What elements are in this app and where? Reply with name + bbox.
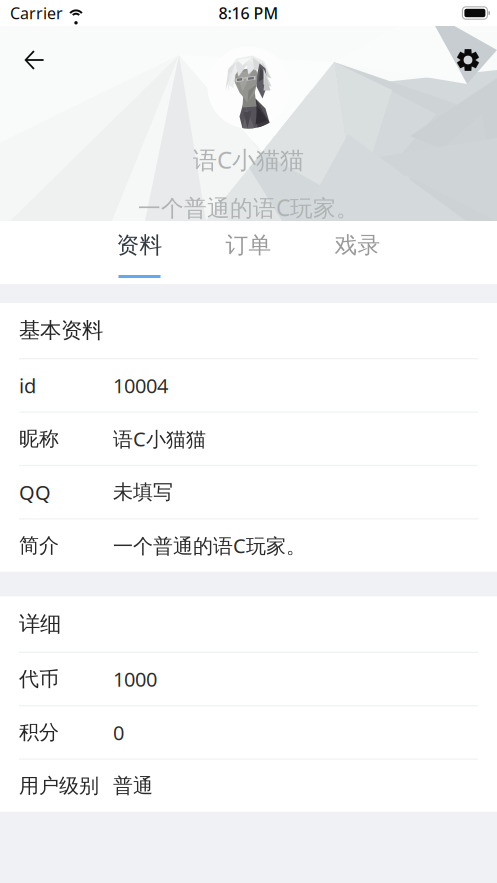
staticText: 昵称: [19, 426, 59, 451]
staticText: 普通: [113, 773, 153, 798]
staticText: 语C小猫猫: [193, 143, 304, 175]
staticText: 10004: [113, 372, 168, 399]
staticText: 用户级别: [19, 773, 99, 798]
button[interactable]: 资料: [85, 221, 194, 284]
button[interactable]: Back: [12, 38, 56, 82]
staticText: 0: [113, 719, 124, 746]
staticText: QQ: [19, 479, 51, 505]
staticText: 订单: [225, 231, 271, 259]
staticText: 基本资料: [19, 317, 103, 344]
staticText: 简介: [19, 533, 59, 558]
staticText: id: [19, 372, 36, 399]
staticText: 详细: [19, 611, 61, 637]
staticText: 未填写: [113, 480, 173, 504]
staticText: 资料: [116, 231, 162, 259]
staticText: 积分: [19, 720, 59, 745]
staticText: 戏录: [334, 231, 380, 259]
button[interactable]: 订单: [194, 221, 303, 284]
staticText: 8:16 PM: [218, 2, 278, 24]
staticText: 一个普通的语C玩家。: [113, 532, 306, 559]
staticText: Carrier: [10, 2, 63, 24]
staticText: 代币: [19, 667, 59, 691]
button[interactable]: Settings: [446, 38, 490, 82]
staticText: 1000: [113, 666, 157, 692]
button[interactable]: 戏录: [303, 221, 412, 284]
staticText: 一个普通的语C玩家。: [138, 192, 359, 222]
staticText: 语C小猫猫: [113, 425, 206, 452]
